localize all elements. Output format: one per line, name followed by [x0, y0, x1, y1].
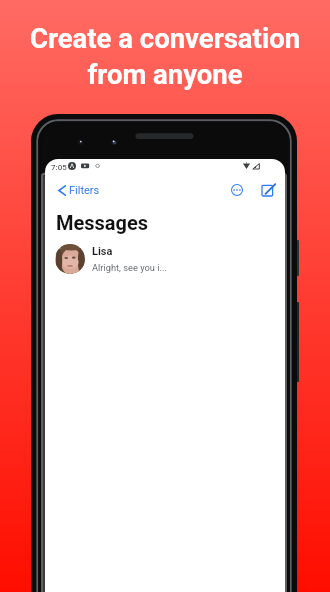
button[interactable]: More options [226, 179, 248, 201]
staticText: Alright, see you i... [92, 262, 167, 273]
button[interactable]: Filters [54, 180, 104, 201]
staticText: Create a conversation from anyone [0, 22, 330, 90]
staticText: Lisa [92, 245, 113, 258]
button[interactable]: Compose new message [257, 179, 279, 201]
button[interactable]: Lisa [45, 241, 285, 277]
staticText: 7:05 [51, 163, 67, 172]
staticText: Messages [56, 211, 149, 234]
staticText: Filters [69, 184, 100, 197]
